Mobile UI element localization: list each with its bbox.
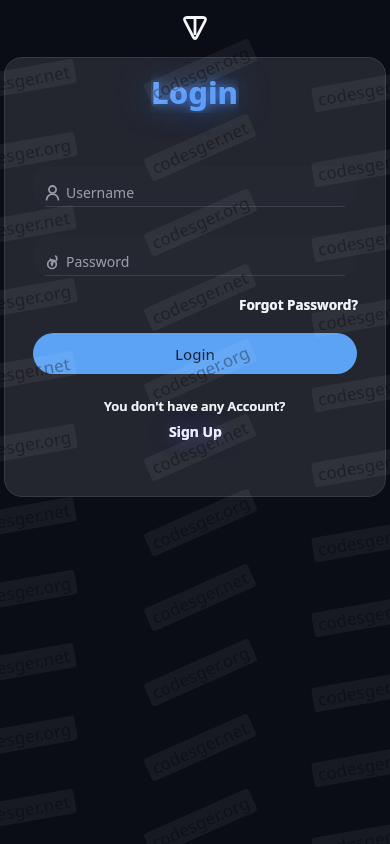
- button[interactable]: Sign Up: [169, 422, 222, 441]
- staticText: codesger.org: [148, 791, 253, 844]
- staticText: codesger.org: [316, 220, 390, 261]
- staticText: codesger.org: [316, 70, 390, 111]
- staticText: codesger.org: [148, 641, 253, 704]
- staticText: codesger.net: [316, 595, 390, 636]
- staticText: Login: [175, 344, 215, 364]
- staticText: codesger.net: [0, 498, 72, 539]
- staticText: codesger.org: [0, 717, 73, 758]
- staticText: codesger.net: [148, 716, 252, 779]
- staticText: codesger.org: [148, 341, 253, 404]
- staticText: codesger.net: [0, 60, 72, 101]
- button[interactable]: Password: [33, 235, 357, 276]
- staticText: codesger.net: [316, 745, 390, 786]
- staticText: codesger.org: [0, 279, 73, 320]
- staticText: Login: [151, 71, 239, 113]
- button[interactable]: Login: [33, 333, 357, 374]
- staticText: codesger.org: [316, 370, 390, 411]
- staticText: codesger.org: [0, 133, 73, 174]
- staticText: codesger.net: [148, 566, 252, 629]
- staticText: Password: [66, 252, 130, 271]
- staticText: codesger.org: [316, 670, 390, 711]
- staticText: codesger.net: [148, 416, 252, 479]
- staticText: codesger.org: [148, 491, 253, 554]
- staticText: codesger.org: [148, 41, 253, 104]
- staticText: codesger.net: [148, 266, 252, 329]
- staticText: codesger.net: [316, 145, 390, 186]
- staticText: Login: [151, 71, 239, 113]
- staticText: codesger.org: [0, 571, 73, 612]
- staticText: codesger.org: [316, 520, 390, 561]
- staticText: codesger.net: [316, 445, 390, 486]
- button[interactable]: Forgot Password?: [239, 296, 358, 314]
- staticText: codesger.org: [316, 820, 390, 844]
- staticText: codesger.net: [0, 206, 72, 247]
- staticText: codesger.org: [148, 191, 253, 254]
- button[interactable]: Username: [33, 166, 357, 207]
- staticText: codesger.org: [0, 425, 73, 466]
- staticText: You don't have any Account?: [104, 397, 286, 415]
- staticText: codesger.net: [316, 295, 390, 336]
- staticText: codesger.net: [148, 116, 252, 179]
- staticText: codesger.net: [0, 644, 72, 685]
- staticText: codesger.net: [0, 790, 72, 831]
- staticText: codesger.net: [0, 352, 72, 393]
- staticText: Username: [66, 183, 135, 202]
